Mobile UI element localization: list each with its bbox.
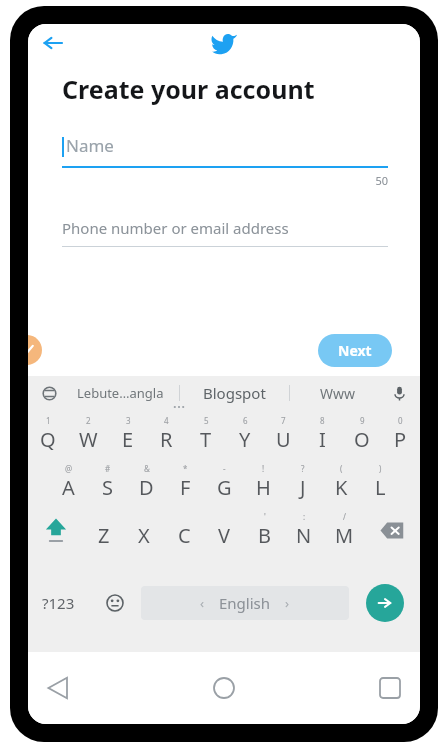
button[interactable]: Emoji: [89, 554, 141, 652]
button[interactable]: /: [324, 506, 364, 554]
staticText: A: [62, 474, 75, 501]
button[interactable]: Recent apps: [364, 662, 416, 714]
staticText: E: [122, 426, 134, 453]
staticText: @: [65, 463, 73, 474]
button[interactable]: 4: [147, 410, 186, 458]
staticText: W: [79, 426, 98, 453]
button[interactable]: Enter: [366, 584, 404, 622]
staticText: ?: [301, 463, 305, 474]
button[interactable]: ?: [283, 458, 322, 506]
button[interactable]: -: [205, 458, 244, 506]
staticText: O: [354, 426, 370, 453]
staticText: ‹: [200, 594, 205, 612]
staticText: English: [219, 593, 271, 613]
staticText: Z: [98, 522, 110, 549]
staticText: X: [138, 522, 150, 549]
button[interactable]: 5: [186, 410, 225, 458]
staticText: *: [183, 463, 188, 474]
button[interactable]: C: [164, 506, 204, 554]
button[interactable]: *: [166, 458, 205, 506]
staticText: K: [335, 474, 348, 501]
staticText: Create your account: [62, 72, 315, 106]
staticText: 5: [204, 415, 209, 426]
staticText: P: [394, 426, 407, 453]
button[interactable]: Home: [198, 662, 250, 714]
staticText: 4: [164, 415, 169, 426]
staticText: (: [340, 463, 343, 474]
button[interactable]: @: [49, 458, 88, 506]
staticText: J: [300, 474, 306, 501]
staticText: Blogspot: [203, 383, 266, 403]
staticText: M: [335, 522, 354, 549]
button[interactable]: Back: [32, 662, 84, 714]
staticText: Lebute…angla: [77, 384, 164, 402]
button[interactable]: 9: [342, 410, 381, 458]
staticText: 0: [398, 415, 403, 426]
button[interactable]: 2: [68, 410, 108, 458]
button[interactable]: Google search: [36, 380, 62, 406]
button[interactable]: Z: [84, 506, 124, 554]
staticText: Y: [239, 426, 251, 453]
button[interactable]: :: [284, 506, 324, 554]
button[interactable]: ): [361, 458, 400, 506]
staticText: F: [180, 474, 191, 501]
button[interactable]: 1: [28, 410, 68, 458]
button[interactable]: 6: [225, 410, 264, 458]
staticText: 6: [243, 415, 248, 426]
button[interactable]: !: [244, 458, 283, 506]
staticText: H: [256, 474, 271, 501]
button[interactable]: Blogspot: [180, 376, 289, 410]
staticText: S: [102, 474, 113, 501]
staticText: 50: [62, 173, 388, 188]
staticText: R: [160, 426, 173, 453]
button[interactable]: ': [244, 506, 284, 554]
staticText: ): [379, 463, 382, 474]
staticText: /: [343, 511, 346, 522]
staticText: B: [258, 522, 271, 549]
button[interactable]: Voice input: [386, 380, 412, 406]
staticText: #: [105, 463, 111, 474]
staticText: :: [303, 511, 306, 522]
button[interactable]: Back: [38, 28, 68, 58]
button[interactable]: Shift: [28, 506, 84, 554]
staticText: Next: [338, 341, 372, 360]
staticText: !: [262, 463, 265, 474]
button[interactable]: 0: [381, 410, 420, 458]
staticText: D: [139, 474, 154, 501]
staticText: N: [296, 522, 312, 549]
button[interactable]: Backspace: [364, 506, 420, 554]
button[interactable]: ‹: [141, 586, 349, 620]
staticText: U: [276, 426, 291, 453]
staticText: ?123: [42, 593, 75, 613]
staticText: Q: [40, 426, 56, 453]
staticText: -: [223, 463, 226, 474]
staticText: I: [319, 426, 326, 453]
button[interactable]: ?123: [28, 554, 89, 652]
staticText: &: [144, 463, 150, 474]
button[interactable]: V: [204, 506, 244, 554]
staticText: V: [218, 522, 230, 549]
staticText: Www: [320, 384, 356, 403]
staticText: T: [200, 426, 212, 453]
staticText: 9: [360, 415, 365, 426]
button[interactable]: (: [322, 458, 361, 506]
staticText: 1: [46, 415, 51, 426]
staticText: 2: [86, 415, 91, 426]
staticText: ': [264, 511, 266, 522]
button[interactable]: Lebute…angla: [62, 376, 179, 410]
button[interactable]: 8: [303, 410, 342, 458]
button[interactable]: X: [124, 506, 164, 554]
button[interactable]: &: [127, 458, 166, 506]
button[interactable]: 3: [108, 410, 147, 458]
staticText: ›: [285, 594, 290, 612]
button[interactable]: 7: [264, 410, 303, 458]
staticText: Phone number or email address: [62, 218, 289, 238]
button[interactable]: Next: [318, 334, 392, 367]
staticText: 7: [281, 415, 286, 426]
staticText: 3: [126, 415, 131, 426]
button[interactable]: Www: [290, 376, 386, 410]
staticText: C: [178, 522, 191, 549]
button[interactable]: #: [88, 458, 127, 506]
staticText: L: [375, 474, 386, 501]
staticText: 8: [320, 415, 325, 426]
